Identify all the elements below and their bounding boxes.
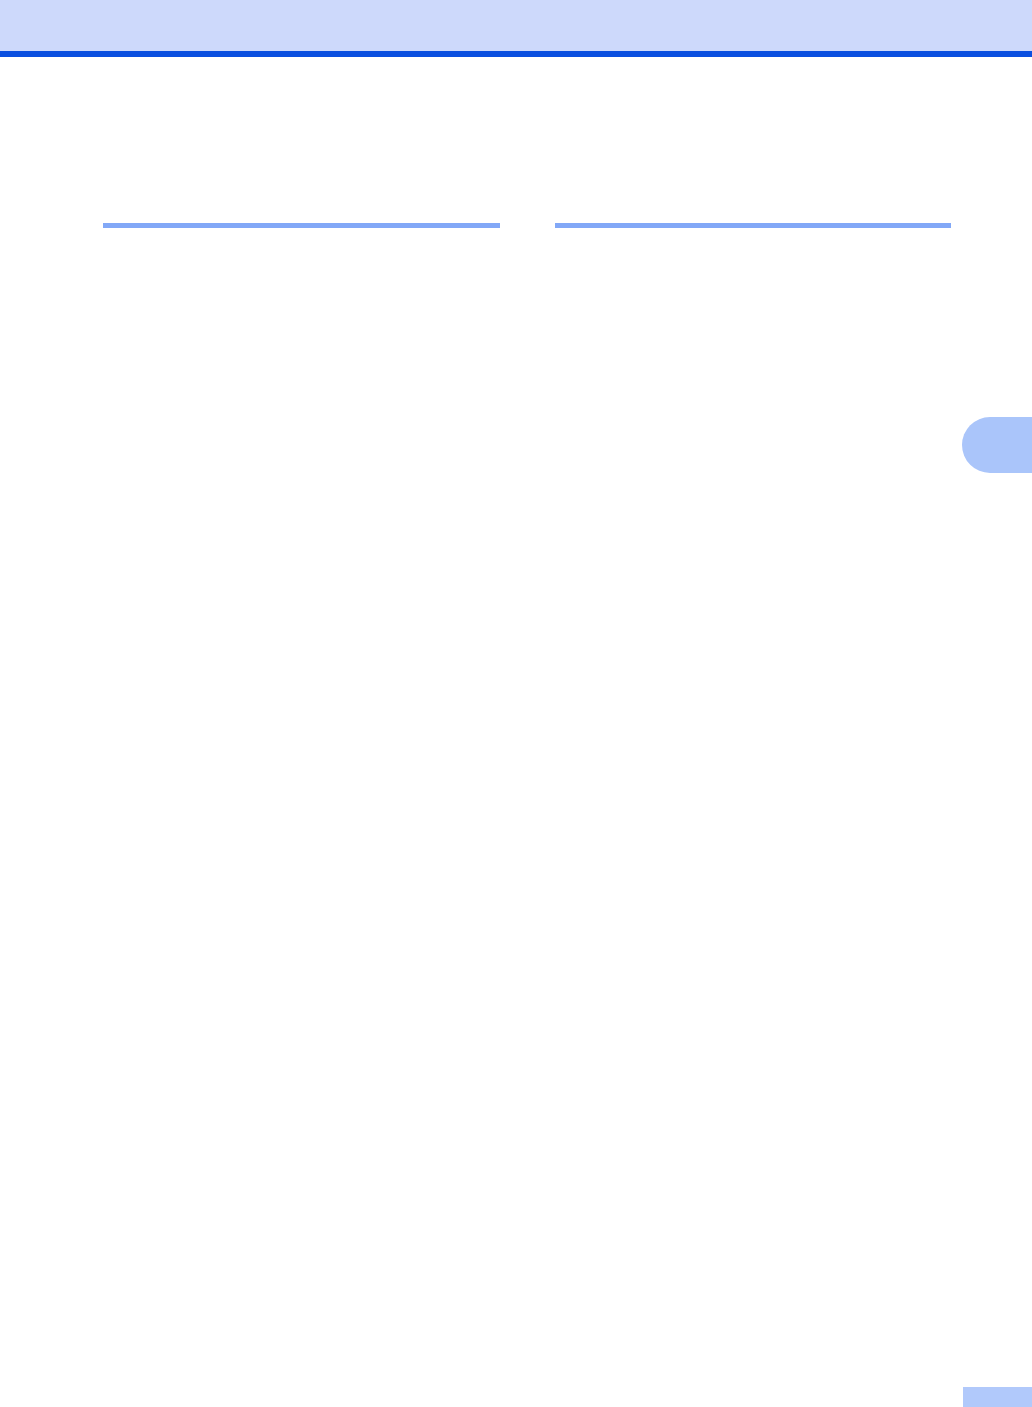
button[interactable]: Chapter tab [962, 417, 1032, 473]
